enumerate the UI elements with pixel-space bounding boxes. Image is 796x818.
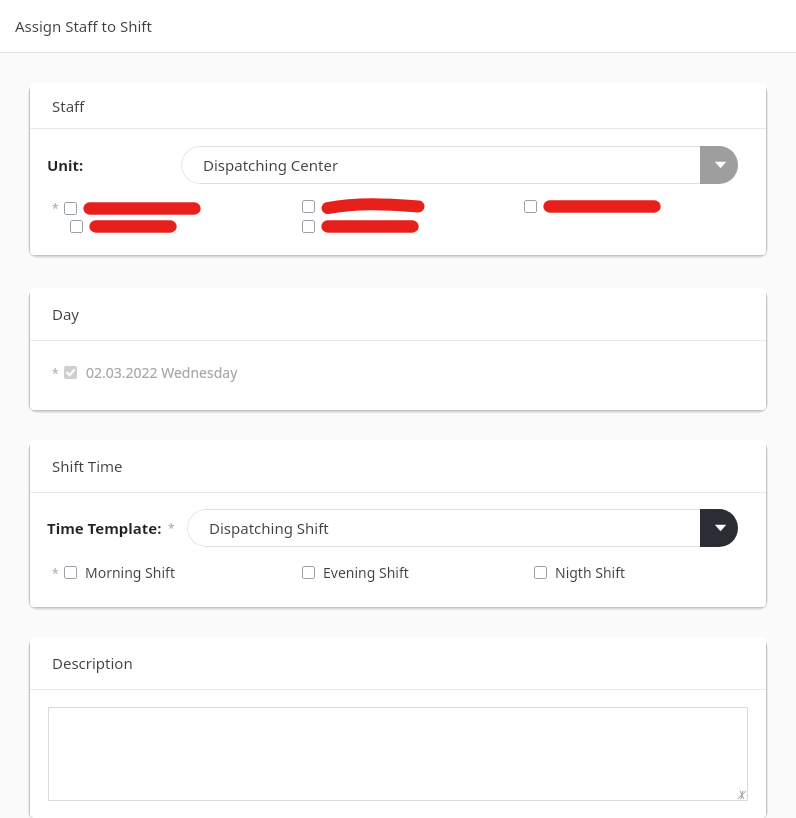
staticText: * xyxy=(52,200,59,216)
staticText: * xyxy=(52,565,59,581)
staticText: Description xyxy=(52,653,133,673)
staticText: * xyxy=(52,365,59,381)
staticText: Shift Time xyxy=(52,456,123,476)
staticText: Dispatching Shift xyxy=(209,518,329,538)
staticText: Morning Shift xyxy=(85,563,175,582)
staticText: 02.03.2022 Wednesday xyxy=(86,363,238,382)
button[interactable]: Nigth Shift xyxy=(534,563,626,582)
button[interactable] xyxy=(64,202,201,215)
button[interactable] xyxy=(70,220,177,233)
button[interactable]: * xyxy=(52,563,175,582)
button[interactable] xyxy=(302,200,425,213)
button[interactable] xyxy=(302,220,419,233)
button[interactable]: Dispatching Shift xyxy=(187,509,738,547)
staticText: Nigth Shift xyxy=(555,563,626,582)
button[interactable]: * xyxy=(52,363,238,382)
staticText: Time Template: xyxy=(47,518,162,538)
button[interactable]: Dispatching Center xyxy=(181,146,738,184)
staticText: Staff xyxy=(52,96,85,116)
staticText: Unit: xyxy=(47,155,84,175)
staticText: Day xyxy=(52,304,80,324)
staticText: * xyxy=(168,520,175,536)
staticText: Evening Shift xyxy=(323,563,409,582)
button[interactable]: Description text area xyxy=(48,707,748,801)
button[interactable]: Evening Shift xyxy=(302,563,409,582)
staticText: Assign Staff to Shift xyxy=(15,16,152,36)
staticText: Dispatching Center xyxy=(203,155,339,175)
button[interactable] xyxy=(524,200,661,213)
